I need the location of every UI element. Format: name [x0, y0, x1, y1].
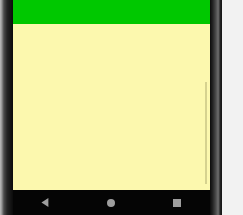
button[interactable]: Recent apps [144, 190, 210, 215]
button[interactable]: Home [78, 190, 144, 215]
button[interactable]: Back [13, 190, 78, 215]
